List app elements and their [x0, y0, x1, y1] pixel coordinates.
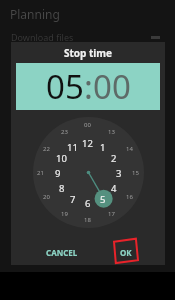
staticText: 3: [116, 167, 122, 180]
staticText: :: [84, 64, 93, 109]
staticText: 00: [84, 121, 91, 129]
staticText: 7: [70, 193, 76, 206]
staticText: 2: [111, 152, 117, 165]
staticText: 13: [108, 128, 115, 136]
staticText: 5: [100, 193, 106, 206]
staticText: 8: [59, 182, 65, 195]
button[interactable]: 00: [93, 64, 131, 109]
staticText: 21: [37, 169, 44, 177]
staticText: 17: [108, 210, 115, 218]
button[interactable]: OK: [115, 244, 137, 261]
staticText: 16: [126, 193, 133, 201]
staticText: 20: [43, 193, 50, 201]
staticText: 11: [67, 141, 78, 154]
staticText: 22: [43, 145, 50, 153]
button[interactable]: CANCEL: [41, 244, 83, 261]
staticText: Download files: [11, 31, 74, 43]
staticText: 23: [61, 128, 68, 136]
staticText: Planning: [10, 6, 60, 22]
staticText: 6: [85, 197, 91, 210]
staticText: 12: [82, 137, 93, 150]
staticText: 10: [56, 152, 67, 165]
staticText: 9: [55, 167, 61, 180]
button[interactable]: 05: [46, 64, 84, 109]
staticText: 19: [61, 210, 68, 218]
staticText: 18: [84, 216, 91, 224]
staticText: 15: [132, 169, 139, 177]
other: Annotation highlighting OK: [111, 237, 141, 266]
button[interactable]: Hour picker clock: [33, 117, 144, 228]
staticText: 14: [126, 145, 133, 153]
staticText: CANCEL: [46, 247, 78, 258]
staticText: Stop time: [11, 46, 165, 60]
staticText: 1: [100, 141, 106, 154]
staticText: OK: [120, 247, 132, 258]
staticText: 4: [111, 182, 117, 195]
